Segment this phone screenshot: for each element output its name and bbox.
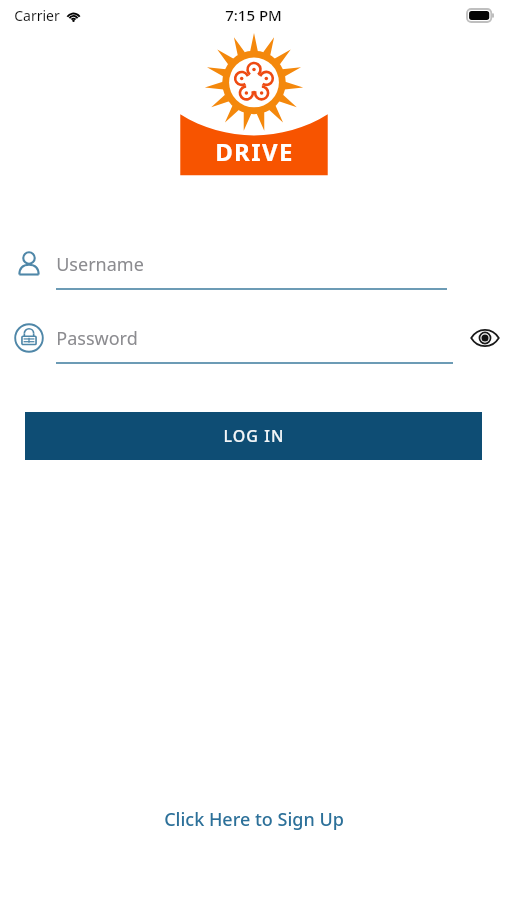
staticText: DRIVE (215, 135, 294, 168)
staticText: Username (56, 252, 144, 277)
other: Show password (470, 328, 500, 348)
staticText: LOG IN (223, 425, 285, 447)
button[interactable]: Username (0, 242, 507, 302)
staticText: Click Here to Sign Up (164, 807, 344, 832)
staticText: Carrier (14, 6, 60, 25)
button[interactable]: Password (0, 316, 507, 376)
staticText: 7:15 PM (225, 5, 282, 25)
other: Username (15, 250, 43, 278)
staticText: Password (56, 326, 138, 351)
button[interactable]: LOG IN (25, 412, 482, 460)
button[interactable]: Click Here to Sign Up (148, 801, 360, 838)
other: Password (14, 323, 44, 353)
